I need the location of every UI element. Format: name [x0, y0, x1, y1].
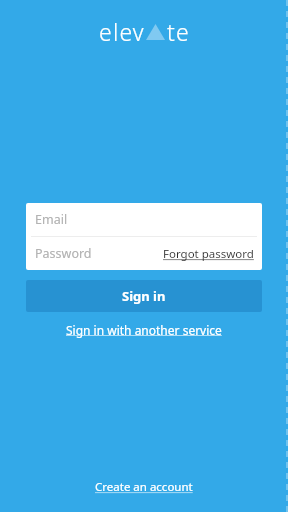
- staticText: Forgot password: [163, 246, 254, 262]
- button[interactable]: Forgot password: [155, 237, 262, 270]
- button[interactable]: Create an account: [87, 475, 201, 499]
- staticText: Sign in with another service: [66, 322, 222, 338]
- staticText: Password: [35, 245, 92, 262]
- button[interactable]: Sign in with another service: [60, 317, 228, 343]
- staticText: Sign in: [122, 287, 166, 305]
- button[interactable]: Password: [26, 237, 262, 270]
- button[interactable]: Email: [26, 203, 262, 236]
- button[interactable]: Sign in: [26, 280, 262, 312]
- staticText: Create an account: [95, 479, 193, 495]
- staticText: elev: [99, 16, 145, 47]
- staticText: te: [167, 16, 190, 47]
- staticText: Email: [35, 211, 68, 228]
